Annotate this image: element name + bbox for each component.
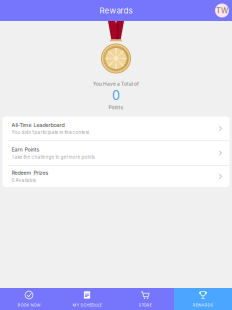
button[interactable]: Earn Points bbox=[2, 141, 229, 165]
staticText: Points bbox=[108, 105, 123, 110]
staticText: Earn Points bbox=[11, 146, 39, 153]
staticText: BOOK NOW bbox=[17, 302, 40, 307]
staticText: Take the challenge to get more points bbox=[11, 154, 94, 160]
staticText: STORE bbox=[138, 302, 151, 307]
staticText: REWARDS bbox=[192, 302, 213, 307]
button[interactable]: All-Time Leaderboard bbox=[2, 116, 229, 140]
staticText: 0 bbox=[112, 88, 120, 103]
staticText: MY SCHEDULE bbox=[72, 302, 101, 307]
staticText: You didn't participate in this contest. bbox=[11, 130, 89, 135]
button[interactable]: BOOK NOW bbox=[0, 288, 58, 310]
staticText: 0 Available bbox=[11, 178, 36, 183]
button[interactable]: Profile bbox=[215, 3, 229, 17]
staticText: All-Time Leaderboard bbox=[11, 122, 64, 128]
staticText: Redeem Prizes bbox=[11, 170, 48, 176]
button[interactable]: STORE bbox=[116, 288, 174, 310]
button[interactable]: Redeem Prizes bbox=[2, 166, 229, 187]
button[interactable]: MY SCHEDULE bbox=[58, 288, 116, 310]
button[interactable]: REWARDS bbox=[174, 288, 232, 310]
staticText: TW bbox=[216, 6, 228, 15]
staticText: Rewards bbox=[99, 6, 132, 15]
staticText: You Have a Total of bbox=[93, 81, 139, 87]
